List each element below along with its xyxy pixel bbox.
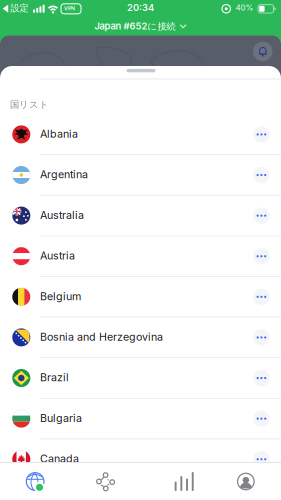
button[interactable]: More options for Brazil xyxy=(253,370,270,386)
button[interactable]: Notifications xyxy=(253,42,272,61)
button[interactable]: Albania xyxy=(0,114,281,155)
staticText: 設定 xyxy=(10,2,28,14)
button[interactable]: More options for Australia xyxy=(253,207,270,224)
button[interactable]: Japan #652に接続 xyxy=(94,20,186,32)
button[interactable]: More options for Bulgaria xyxy=(253,410,270,427)
button[interactable]: More options for Canada xyxy=(253,451,270,467)
staticText: Bosnia and Herzegovina xyxy=(40,331,163,343)
button[interactable]: Austria xyxy=(0,236,281,276)
button[interactable]: Brazil xyxy=(0,358,281,398)
button[interactable]: Canada xyxy=(0,439,281,479)
button[interactable]: More options for Belgium xyxy=(253,289,270,305)
button[interactable]: More options for Austria xyxy=(253,248,270,264)
button[interactable]: Belgium xyxy=(0,276,281,317)
button[interactable]: Account xyxy=(211,463,281,500)
button[interactable]: Argentina xyxy=(0,155,281,195)
staticText: Canada xyxy=(40,452,79,465)
button[interactable]: More options for Bosnia and Herzegovina xyxy=(253,329,270,346)
staticText: VPN xyxy=(64,5,75,11)
button[interactable]: Share xyxy=(70,463,140,500)
button[interactable]: Australia xyxy=(0,195,281,236)
staticText: 20:34 xyxy=(127,2,154,13)
button[interactable]: More options for Argentina xyxy=(253,167,270,183)
staticText: Belgium xyxy=(40,290,81,303)
button[interactable]: Servers xyxy=(0,463,70,500)
button[interactable]: More options for Albania xyxy=(253,126,270,143)
staticText: Bulgaria xyxy=(40,412,82,424)
staticText: Australia xyxy=(40,209,84,221)
button[interactable]: Bosnia and Herzegovina xyxy=(0,317,281,358)
staticText: Austria xyxy=(40,249,75,262)
staticText: 40% xyxy=(235,3,253,12)
staticText: Japan #652に接続 xyxy=(94,20,175,32)
button[interactable]: Statistics xyxy=(140,463,211,500)
staticText: Argentina xyxy=(40,168,88,181)
staticText: Brazil xyxy=(40,371,69,384)
staticText: Albania xyxy=(40,128,78,140)
staticText: 国リスト xyxy=(10,99,49,110)
button[interactable]: Bulgaria xyxy=(0,398,281,439)
